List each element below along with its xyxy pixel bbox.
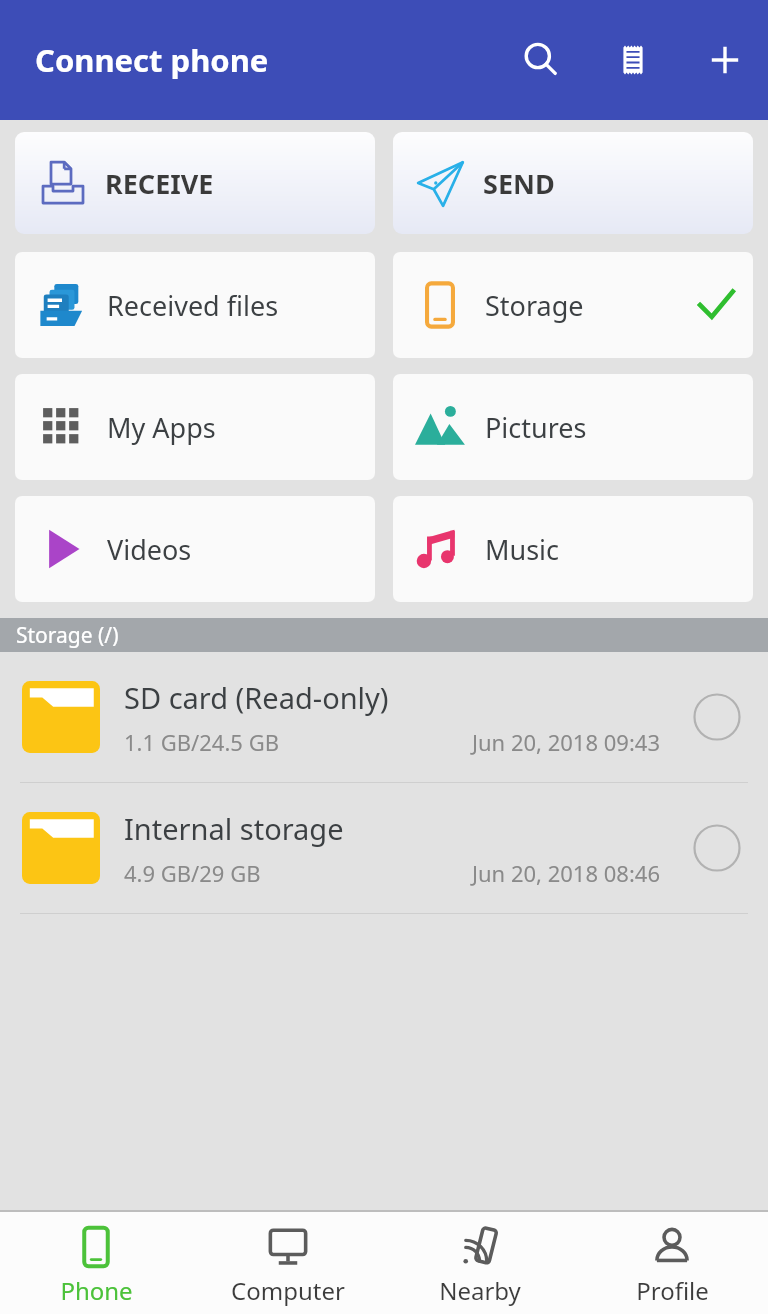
button[interactable]: SD card (Read-only) xyxy=(0,652,768,782)
staticText: Phone xyxy=(60,1274,133,1307)
staticText: Jun 20, 2018 08:46 xyxy=(472,858,660,888)
button[interactable]: Search xyxy=(512,31,570,89)
button[interactable]: SEND xyxy=(393,132,753,234)
button[interactable]: RECEIVE xyxy=(15,132,375,234)
button[interactable]: Nearby xyxy=(384,1212,576,1314)
staticText: SD card (Read-only) xyxy=(124,678,389,717)
staticText: Internal storage xyxy=(124,809,344,848)
staticText: Received files xyxy=(107,287,279,324)
button[interactable]: Select SD card (Read-only) xyxy=(688,688,746,746)
staticText: Videos xyxy=(107,531,192,568)
button[interactable]: Videos xyxy=(15,496,375,602)
staticText: Connect phone xyxy=(35,39,269,81)
staticText: Jun 20, 2018 09:43 xyxy=(472,727,660,757)
button[interactable]: Transfer history xyxy=(604,31,662,89)
button[interactable]: Pictures xyxy=(393,374,753,480)
button[interactable]: Profile xyxy=(576,1212,768,1314)
button[interactable]: Music xyxy=(393,496,753,602)
staticText: Profile xyxy=(636,1274,709,1307)
button[interactable]: Add xyxy=(696,31,754,89)
button[interactable]: Storage xyxy=(393,252,753,358)
button[interactable]: Computer xyxy=(192,1212,384,1314)
button[interactable]: Internal storage xyxy=(0,783,768,913)
staticText: Storage (/) xyxy=(16,621,119,650)
staticText: 1.1 GB/24.5 GB xyxy=(124,727,279,757)
staticText: SEND xyxy=(483,165,555,202)
staticText: Music xyxy=(485,531,560,568)
staticText: Pictures xyxy=(485,409,587,446)
staticText: 4.9 GB/29 GB xyxy=(124,858,261,888)
staticText: Storage xyxy=(485,287,584,324)
staticText: RECEIVE xyxy=(105,165,214,202)
button[interactable]: Phone xyxy=(0,1212,192,1314)
button[interactable]: My Apps xyxy=(15,374,375,480)
button[interactable]: Select Internal storage xyxy=(688,819,746,877)
staticText: Nearby xyxy=(439,1274,521,1307)
staticText: My Apps xyxy=(107,409,216,446)
staticText: Computer xyxy=(231,1274,345,1307)
button[interactable]: Received files xyxy=(15,252,375,358)
